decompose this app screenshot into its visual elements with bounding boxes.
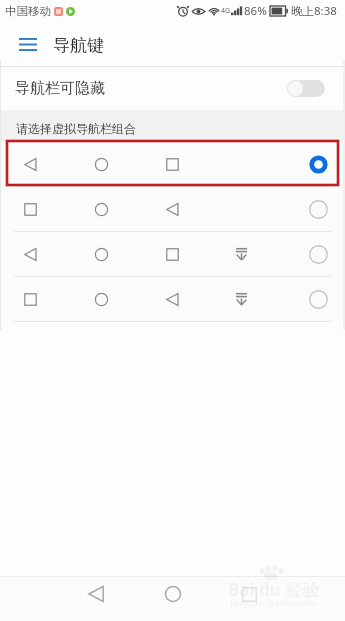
button[interactable] — [0, 187, 345, 231]
staticText: 4G — [221, 6, 231, 16]
staticText: 请选择虚拟导航栏组合 — [16, 121, 136, 136]
button[interactable] — [0, 277, 345, 321]
staticText: jingyan.baidu.com — [230, 596, 318, 609]
button[interactable]: Menu — [0, 22, 45, 66]
staticText: 晚上8:38 — [291, 3, 337, 19]
staticText: 中国移动 — [5, 4, 51, 18]
button[interactable] — [0, 232, 345, 276]
button[interactable] — [0, 142, 345, 186]
staticText: 导航栏可隐藏 — [15, 79, 105, 98]
button[interactable]: Back — [74, 572, 118, 616]
staticText: Bai du 经验 — [228, 578, 320, 601]
button[interactable]: 导航栏可隐藏 — [0, 67, 345, 110]
button[interactable]: Recents — [227, 572, 271, 616]
staticText: 86% — [244, 3, 267, 19]
button[interactable]: Home — [151, 572, 195, 616]
staticText: 导航键 — [53, 35, 104, 56]
